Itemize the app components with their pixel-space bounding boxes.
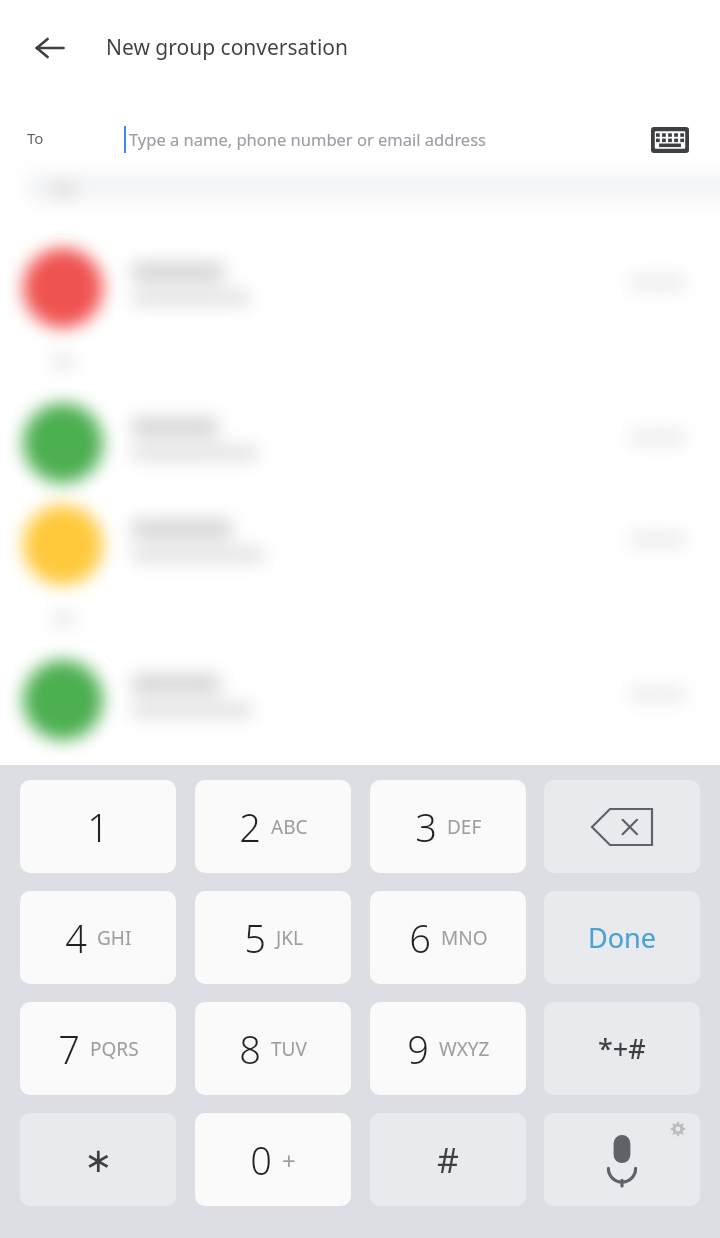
staticText: 7 (58, 1023, 80, 1075)
staticText: 0 (250, 1134, 272, 1186)
button[interactable]: 3 (370, 780, 526, 873)
button[interactable]: 8 (195, 1002, 351, 1095)
staticText: MNO (441, 925, 488, 951)
button[interactable]: 9 (370, 1002, 526, 1095)
button[interactable]: 4 (20, 891, 176, 984)
button[interactable]: 1 (20, 780, 176, 873)
staticText: DEF (447, 814, 482, 840)
staticText: To (27, 128, 44, 148)
staticText: WXYZ (439, 1036, 490, 1062)
staticText: TUV (271, 1036, 307, 1062)
staticText: 8 (239, 1023, 261, 1075)
staticText: Done (588, 919, 656, 956)
button[interactable]: Done (544, 891, 700, 984)
staticText: 6 (409, 912, 431, 964)
staticText: GHI (97, 925, 132, 951)
button[interactable]: Back (22, 20, 78, 76)
staticText: 5 (244, 912, 266, 964)
staticText: 1 (87, 801, 109, 853)
button[interactable]: Show keyboard (642, 112, 698, 168)
staticText: ABC (271, 814, 308, 840)
button[interactable]: ∗ (20, 1113, 176, 1206)
staticText: 9 (407, 1023, 429, 1075)
staticText: PQRS (90, 1036, 139, 1062)
button[interactable]: 7 (20, 1002, 176, 1095)
button[interactable]: 2 (195, 780, 351, 873)
staticText: + (282, 1144, 296, 1177)
button[interactable]: # (370, 1113, 526, 1206)
staticText: # (437, 1137, 459, 1183)
button[interactable]: *+# (544, 1002, 700, 1095)
staticText: ∗ (84, 1140, 113, 1180)
button[interactable]: 6 (370, 891, 526, 984)
staticText: 3 (415, 801, 437, 853)
staticText: New group conversation (106, 33, 349, 62)
staticText: 2 (239, 801, 261, 853)
button[interactable]: 0 (195, 1113, 351, 1206)
staticText: *+# (598, 1030, 646, 1067)
staticText: Type a name, phone number or email addre… (129, 128, 486, 150)
staticText: JKL (276, 925, 303, 951)
staticText: 4 (65, 912, 87, 964)
button[interactable]: Voice input (544, 1113, 700, 1206)
button[interactable]: Backspace (544, 780, 700, 873)
button[interactable]: 5 (195, 891, 351, 984)
